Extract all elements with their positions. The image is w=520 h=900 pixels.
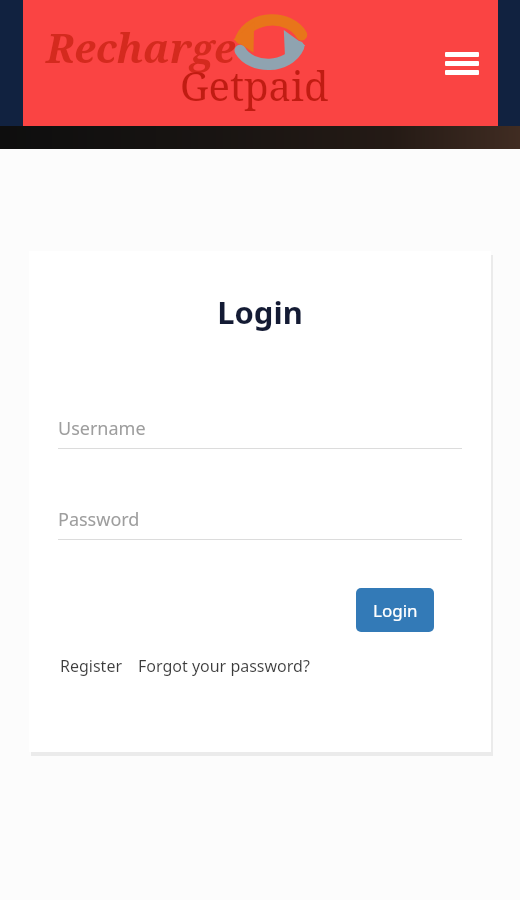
staticText: Username <box>58 416 146 441</box>
staticText: Recharge <box>46 20 236 74</box>
button[interactable]: Password <box>58 507 462 540</box>
staticText: Getpaid <box>180 58 329 112</box>
staticText: Register <box>60 655 123 677</box>
button[interactable]: Username <box>58 416 462 449</box>
staticText: Login <box>373 599 418 622</box>
staticText: Password <box>58 507 140 532</box>
staticText: Forgot your password? <box>138 655 310 677</box>
button[interactable]: Register <box>60 655 123 677</box>
staticText: Login <box>29 291 491 333</box>
button[interactable]: Forgot your password? <box>138 655 310 677</box>
button[interactable]: Open navigation menu <box>439 44 485 82</box>
button[interactable]: Login <box>356 588 434 632</box>
